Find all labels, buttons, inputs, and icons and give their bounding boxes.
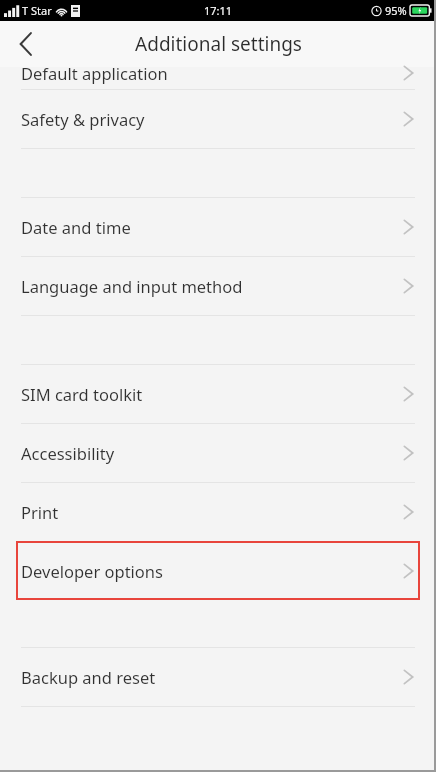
staticText: 17:11 [204,3,233,18]
staticText: 95% [385,3,407,18]
staticText: Date and time [21,216,131,238]
button[interactable]: Backup and reset [0,648,436,706]
staticText: Additional settings [135,31,302,57]
staticText: Accessibility [21,442,115,464]
button[interactable]: Developer options [17,542,419,599]
button[interactable]: Default application [0,67,436,89]
staticText: T Star [22,3,52,18]
button[interactable]: Back [0,21,52,67]
staticText: Safety & privacy [21,108,145,130]
staticText: Print [21,501,59,523]
button[interactable]: Print [0,483,436,541]
button[interactable]: Safety & privacy [0,90,436,148]
button[interactable]: SIM card toolkit [0,365,436,423]
button[interactable]: Language and input method [0,257,436,315]
staticText: SIM card toolkit [21,383,143,405]
staticText: Backup and reset [21,666,156,688]
button[interactable]: Accessibility [0,424,436,482]
staticText: Default application [21,62,168,84]
staticText: Language and input method [21,275,243,297]
staticText: Developer options [21,560,163,582]
button[interactable]: Date and time [0,198,436,256]
